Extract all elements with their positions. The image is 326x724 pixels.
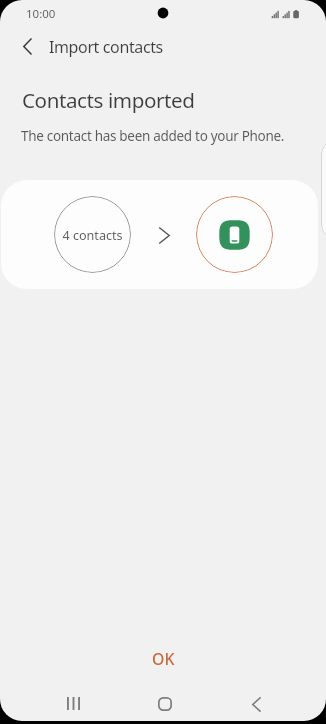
staticText: Contacts imported bbox=[22, 86, 195, 114]
button[interactable]: Back bbox=[227, 683, 284, 721]
button[interactable]: OK bbox=[0, 639, 326, 679]
staticText: OK bbox=[152, 648, 175, 670]
staticText: 10:00 bbox=[26, 6, 56, 22]
staticText: 4 contacts bbox=[62, 227, 123, 244]
button[interactable]: 4 contacts bbox=[1, 180, 318, 289]
button[interactable]: Recents bbox=[45, 683, 102, 721]
staticText: The contact has been added to your Phone… bbox=[21, 127, 285, 145]
button[interactable]: Back bbox=[13, 32, 41, 60]
staticText: Import contacts bbox=[49, 36, 163, 58]
button[interactable]: Home bbox=[136, 683, 193, 721]
